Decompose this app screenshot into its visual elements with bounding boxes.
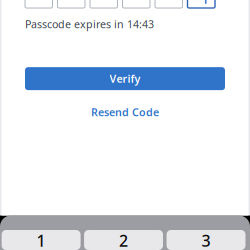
staticText: Resend Code xyxy=(91,105,159,119)
staticText: 3 xyxy=(201,230,210,250)
button[interactable]: 3 xyxy=(166,230,245,250)
staticText: Verify xyxy=(109,72,140,86)
staticText: 2 xyxy=(119,230,128,250)
button[interactable]: Resend Code xyxy=(25,106,225,118)
button[interactable]: 1 xyxy=(2,230,81,250)
button[interactable]: Verify xyxy=(25,67,225,90)
staticText: Passcode expires in 14:43 xyxy=(25,17,154,31)
staticText: 1 xyxy=(37,230,46,250)
button[interactable]: 2 xyxy=(84,230,163,250)
